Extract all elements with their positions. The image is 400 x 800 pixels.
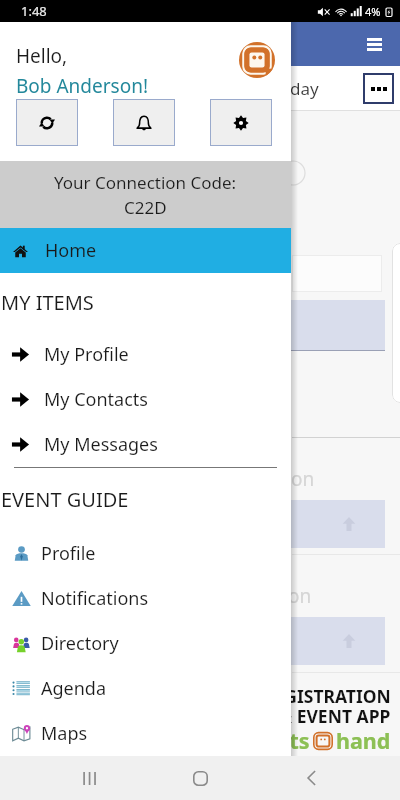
button[interactable]: Open navigation menu	[359, 29, 389, 59]
button[interactable]: Directory	[0, 621, 291, 666]
button[interactable]: My Profile	[0, 332, 291, 377]
staticText: on	[288, 583, 312, 609]
staticText: Agenda	[41, 676, 107, 701]
button[interactable]: Home	[179, 757, 221, 799]
staticText: 4%	[365, 4, 381, 19]
button[interactable]: Maps	[0, 711, 291, 756]
button[interactable]: Back	[290, 757, 332, 799]
button[interactable]: Recent apps	[68, 757, 110, 799]
button[interactable]: Home	[0, 228, 291, 273]
staticText: Profile	[41, 541, 96, 566]
staticText: Home	[45, 238, 97, 263]
staticText: Bob Anderson!	[16, 73, 149, 99]
staticText: Your Connection Code:	[54, 171, 237, 194]
staticText: C22D	[124, 196, 167, 219]
staticText: day	[290, 77, 319, 100]
button[interactable]: More options	[363, 73, 394, 104]
staticText: lts	[283, 726, 310, 755]
button[interactable]: Notifications	[0, 576, 291, 621]
staticText: My Profile	[44, 342, 129, 367]
staticText: EVENT GUIDE	[1, 486, 129, 513]
button[interactable]: Profile	[0, 531, 291, 576]
staticText: Directory	[41, 631, 119, 656]
staticText: ion	[286, 466, 315, 492]
button[interactable]: Notifications	[113, 99, 175, 146]
staticText: Hello,	[16, 43, 68, 69]
button[interactable]: My Messages	[0, 422, 291, 467]
button[interactable]: My Contacts	[0, 377, 291, 422]
staticText: hand	[336, 726, 391, 755]
button[interactable]: Settings	[210, 99, 272, 146]
staticText: My Messages	[44, 432, 158, 457]
staticText: Notifications	[41, 586, 149, 611]
button[interactable]: Agenda	[0, 666, 291, 711]
button[interactable]: App logo	[239, 42, 275, 78]
staticText: & EVENT APP	[279, 704, 391, 728]
staticText: MY ITEMS	[1, 289, 94, 316]
button[interactable]: Refresh	[16, 99, 78, 146]
staticText: REGISTRATION	[263, 684, 391, 708]
staticText: 1:48	[21, 2, 47, 20]
staticText: Maps	[41, 721, 88, 746]
staticText: My Contacts	[44, 387, 148, 412]
